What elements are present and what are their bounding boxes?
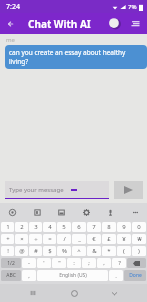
button[interactable]: Home [66, 285, 82, 301]
button[interactable]: Emoji [6, 206, 18, 218]
button[interactable]: English (US) [37, 270, 108, 281]
staticText: Done [129, 272, 142, 279]
button[interactable]: Menu [129, 17, 142, 30]
staticText: + [6, 235, 10, 243]
button[interactable]: 4 [43, 222, 56, 232]
staticText: _ [78, 235, 81, 243]
button[interactable]: Back [3, 16, 19, 32]
button[interactable]: ABC [1, 270, 21, 281]
button[interactable]: : [67, 258, 81, 268]
staticText: $ [48, 247, 52, 255]
button[interactable]: , [97, 258, 111, 268]
staticText: 4 [48, 223, 52, 231]
button[interactable]: 0 [132, 222, 146, 232]
staticText: 7 [92, 223, 96, 231]
staticText: ₩ [137, 235, 142, 243]
button[interactable]: Done [124, 270, 146, 281]
button[interactable]: / [57, 234, 71, 244]
staticText: ÷ [34, 235, 38, 243]
staticText: - [28, 259, 30, 267]
button[interactable]: = [43, 234, 56, 244]
button[interactable]: Type your message [5, 181, 109, 199]
button[interactable]: + [1, 234, 14, 244]
button[interactable]: 6 [72, 222, 86, 232]
staticText: . [115, 272, 117, 280]
button[interactable]: ÷ [29, 234, 42, 244]
staticText: ' [43, 259, 45, 267]
button[interactable]: ; [82, 258, 96, 268]
button[interactable]: 2 [15, 222, 28, 232]
staticText: ) [138, 247, 140, 255]
staticText: me [6, 36, 15, 44]
button[interactable]: ( [117, 246, 131, 256]
staticText: 5 [62, 223, 66, 231]
staticText: ^ [77, 247, 81, 255]
staticText: % [62, 247, 67, 255]
staticText: ¥ [122, 235, 126, 243]
button[interactable]: , [22, 270, 36, 281]
button[interactable]: ' [37, 258, 51, 268]
staticText: ( [123, 247, 125, 255]
button[interactable]: $ [43, 246, 56, 256]
staticText: " [58, 259, 61, 267]
button[interactable]: 3 [29, 222, 42, 232]
staticText: , [28, 272, 30, 280]
button[interactable]: Voice input [104, 206, 116, 218]
button[interactable]: 8 [102, 222, 116, 232]
staticText: * [107, 247, 111, 255]
button[interactable]: × [15, 234, 28, 244]
button[interactable]: % [57, 246, 71, 256]
button[interactable]: _ [72, 234, 86, 244]
staticText: € [92, 235, 96, 243]
button[interactable]: - [22, 258, 36, 268]
button[interactable]: Profile [108, 17, 121, 30]
button[interactable]: Backspace [127, 258, 146, 268]
staticText: ABC [6, 272, 16, 279]
button[interactable]: Stickers [31, 206, 43, 218]
staticText: ? [118, 259, 121, 267]
button[interactable]: " [52, 258, 66, 268]
button[interactable]: 5 [57, 222, 71, 232]
button[interactable]: ¥ [117, 234, 131, 244]
staticText: 6 [77, 223, 81, 231]
staticText: = [48, 235, 52, 243]
staticText: 1 [6, 223, 10, 231]
staticText: : [73, 259, 75, 267]
button[interactable]: 7 [87, 222, 101, 232]
button[interactable]: Send [114, 181, 143, 199]
button[interactable]: & [87, 246, 101, 256]
staticText: Type your message [9, 186, 64, 194]
staticText: English (US) [59, 272, 87, 279]
staticText: × [20, 235, 24, 243]
staticText: 3 [34, 223, 38, 231]
button[interactable]: @ [15, 246, 28, 256]
staticText: ; [88, 259, 90, 267]
staticText: @ [19, 247, 25, 255]
button[interactable]: £ [102, 234, 116, 244]
button[interactable]: # [29, 246, 42, 256]
button[interactable]: Clipboard [55, 206, 67, 218]
button[interactable]: ) [132, 246, 146, 256]
button[interactable]: Settings [80, 206, 92, 218]
staticText: 0 [137, 223, 141, 231]
button[interactable]: can you create an essay about healthy li… [5, 45, 147, 69]
staticText: # [34, 247, 38, 255]
button[interactable]: € [87, 234, 101, 244]
staticText: Chat With AI [28, 17, 91, 31]
button[interactable]: Recents [25, 285, 41, 301]
staticText: / [63, 235, 66, 243]
staticText: 7:24 [6, 2, 20, 12]
button[interactable]: 9 [117, 222, 131, 232]
button[interactable]: ? [112, 258, 126, 268]
button[interactable]: ! [1, 246, 14, 256]
staticText: 1/2 [7, 260, 15, 267]
button[interactable]: 1/2 [1, 258, 21, 268]
button[interactable]: ₩ [132, 234, 146, 244]
button[interactable]: . [109, 270, 123, 281]
button[interactable]: Back [106, 285, 122, 301]
button[interactable]: ^ [72, 246, 86, 256]
staticText: 2 [20, 223, 24, 231]
button[interactable]: More options [129, 206, 141, 218]
button[interactable]: 1 [1, 222, 14, 232]
button[interactable]: * [102, 246, 116, 256]
